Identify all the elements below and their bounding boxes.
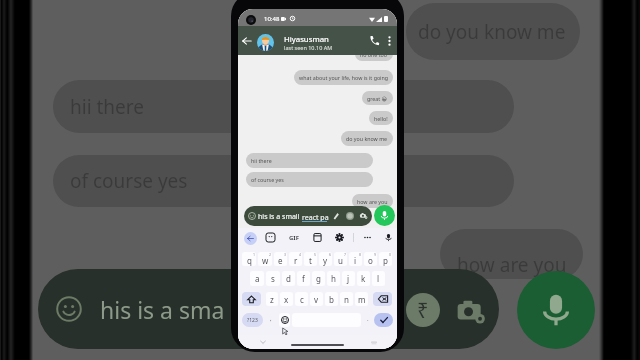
staticText: 0 (389, 252, 392, 257)
staticText: t (309, 255, 312, 266)
staticText: b (329, 294, 334, 305)
button[interactable]: q (242, 252, 256, 266)
staticText: u (338, 255, 343, 266)
button[interactable]: g (312, 271, 325, 286)
button[interactable]: his is a small (244, 206, 372, 226)
staticText: ₹ (417, 297, 429, 324)
staticText: 8 (359, 252, 362, 257)
staticText: how are you (357, 198, 388, 205)
button[interactable]: Attach (330, 206, 342, 226)
button[interactable]: z (266, 292, 278, 306)
button[interactable]: f (297, 271, 310, 286)
button[interactable]: r (289, 252, 302, 266)
staticText: of course yes (251, 176, 284, 183)
staticText: do you know me (418, 19, 566, 45)
button[interactable]: Collapse toolbar (244, 232, 257, 245)
button[interactable]: Settings (333, 231, 346, 244)
staticText: of course yes (70, 168, 188, 194)
staticText: 5 (314, 252, 317, 257)
button[interactable]: Payments (344, 206, 356, 226)
staticText: 9 (374, 252, 377, 257)
button[interactable]: Voice message (374, 205, 395, 226)
staticText: 7 (344, 252, 347, 257)
button[interactable]: k (357, 271, 370, 286)
staticText: x (284, 294, 289, 305)
staticText: 1 (253, 252, 256, 257)
button[interactable]: Shift (242, 292, 261, 306)
button[interactable]: p (379, 252, 392, 266)
button[interactable]: h (327, 271, 340, 286)
staticText: p (383, 255, 388, 266)
staticText: 4 (299, 252, 302, 257)
button[interactable]: Call (366, 26, 382, 55)
staticText: c (300, 294, 304, 305)
button[interactable]: y (319, 252, 332, 266)
button[interactable]: Backspace (373, 292, 392, 306)
button[interactable]: what about your life, how is it going (294, 70, 393, 85)
button[interactable]: d (282, 271, 295, 286)
button[interactable]: great 😀 (362, 91, 393, 105)
staticText: last seen 10.10 AM (284, 44, 333, 51)
button[interactable]: t (304, 252, 317, 266)
staticText: do you know me (346, 135, 388, 142)
staticText: s (271, 273, 275, 284)
button[interactable]: Clipboard (311, 231, 324, 244)
button[interactable]: v (310, 292, 323, 306)
button[interactable]: hii there (246, 153, 373, 168)
staticText: o (368, 255, 373, 266)
button[interactable]: n (340, 292, 353, 306)
button[interactable]: e (274, 252, 287, 266)
button[interactable]: x (280, 292, 293, 306)
button[interactable]: do you know me (341, 131, 393, 146)
staticText: i (354, 255, 357, 266)
button[interactable]: hello! (369, 111, 393, 125)
button[interactable]: Emoji (279, 313, 290, 327)
button[interactable]: b (325, 292, 338, 306)
staticText: 3 (284, 252, 287, 257)
button[interactable]: , (264, 313, 278, 327)
button[interactable]: c (295, 292, 308, 306)
button[interactable]: j (342, 271, 355, 286)
button[interactable]: m (355, 292, 368, 306)
staticText: hello! (374, 115, 388, 122)
button[interactable]: Back (240, 26, 254, 55)
button[interactable]: Contact avatar (257, 34, 274, 51)
button[interactable]: s (266, 271, 280, 286)
staticText: e (278, 255, 283, 266)
staticText: y (323, 255, 328, 266)
button[interactable]: Camera (358, 206, 370, 226)
staticText: f (302, 273, 305, 284)
staticText: . (367, 315, 369, 323)
button[interactable]: Voice input (382, 231, 395, 244)
button[interactable]: GIF (286, 231, 301, 244)
button[interactable]: More (361, 231, 374, 244)
button[interactable]: i (349, 252, 362, 266)
button[interactable]: w (258, 252, 272, 266)
button[interactable]: u (334, 252, 347, 266)
button[interactable]: no one too (355, 47, 393, 61)
staticText: w (262, 255, 269, 266)
staticText: h (331, 273, 336, 284)
button[interactable]: l (372, 271, 385, 286)
staticText: z (270, 294, 274, 305)
staticText: n (344, 294, 349, 305)
staticText: j (347, 273, 350, 284)
staticText: no one too (360, 51, 388, 58)
button[interactable]: how are you (352, 194, 393, 208)
staticText: great 😀 (367, 95, 388, 102)
button[interactable]: More options (383, 26, 396, 55)
staticText: react pa (302, 213, 329, 222)
button[interactable]: Sticker (264, 231, 277, 244)
staticText: m (358, 294, 366, 305)
button[interactable]: a (250, 271, 264, 286)
staticText: r (294, 255, 298, 266)
button[interactable]: . (362, 313, 373, 327)
staticText: a (255, 273, 260, 284)
staticText: 10:48 (264, 15, 280, 23)
button[interactable]: Enter (374, 313, 393, 327)
staticText: hii there (70, 94, 144, 120)
button[interactable]: ?123 (242, 313, 263, 327)
button[interactable]: o (364, 252, 377, 266)
button[interactable]: of course yes (246, 172, 373, 187)
